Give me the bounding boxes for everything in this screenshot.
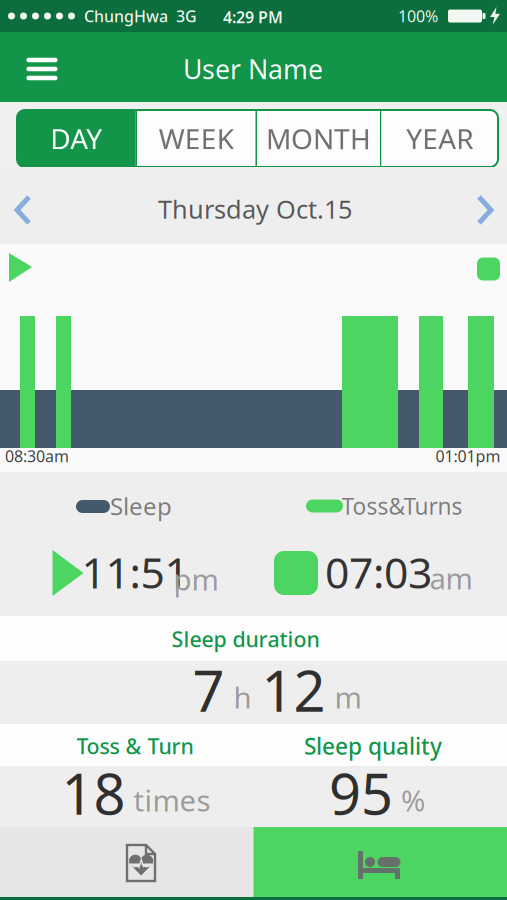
- staticText: 11:51: [81, 544, 188, 600]
- button[interactable]: [253, 827, 507, 897]
- staticText: WEEK: [159, 120, 234, 157]
- staticText: ChungHwa 3G: [84, 5, 197, 27]
- staticText: 07:03: [325, 544, 432, 600]
- button[interactable]: WEEK: [137, 110, 255, 167]
- button[interactable]: DAY: [17, 110, 135, 167]
- staticText: 12: [261, 653, 325, 727]
- button[interactable]: [18, 49, 66, 89]
- staticText: 08:30am: [5, 445, 69, 467]
- button[interactable]: [0, 827, 253, 897]
- staticText: MONTH: [266, 120, 371, 157]
- staticText: 01:01pm: [435, 445, 500, 467]
- staticText: 18: [61, 756, 125, 830]
- staticText: m: [334, 677, 361, 716]
- staticText: 4:29 PM: [223, 6, 283, 28]
- staticText: h: [233, 677, 251, 716]
- staticText: DAY: [50, 120, 102, 157]
- staticText: 100%: [398, 5, 438, 27]
- staticText: Sleep duration: [171, 625, 319, 653]
- staticText: pm: [173, 559, 218, 598]
- staticText: Toss&Turns: [341, 491, 462, 521]
- staticText: Thursday Oct.15: [158, 192, 352, 226]
- staticText: 7: [192, 653, 224, 727]
- button[interactable]: [9, 193, 39, 227]
- staticText: Sleep: [110, 490, 172, 522]
- staticText: 95: [329, 756, 393, 830]
- staticText: Toss & Turn: [76, 732, 193, 760]
- staticText: Sleep quality: [304, 731, 442, 761]
- staticText: times: [133, 780, 210, 819]
- button[interactable]: YEAR: [381, 110, 498, 167]
- button[interactable]: MONTH: [257, 110, 380, 167]
- staticText: User Name: [183, 51, 323, 87]
- staticText: %: [401, 780, 425, 819]
- button[interactable]: [469, 193, 499, 227]
- staticText: YEAR: [406, 120, 473, 157]
- staticText: am: [429, 558, 472, 597]
